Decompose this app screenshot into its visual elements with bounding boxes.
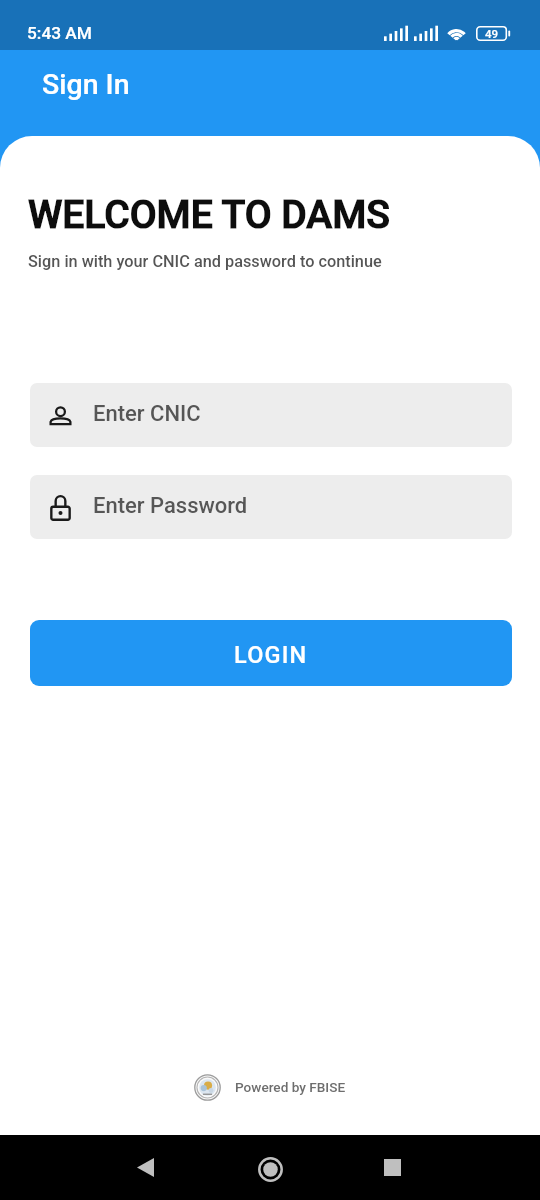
staticText: Enter Password — [93, 493, 248, 519]
button[interactable]: Enter CNIC — [30, 383, 512, 447]
button[interactable]: Home — [243, 1142, 298, 1197]
button[interactable]: Recent apps — [365, 1140, 420, 1195]
staticText: 5:43 AM — [27, 23, 92, 43]
button[interactable]: LOGIN — [30, 620, 512, 686]
staticText: Powered by FBISE — [235, 1079, 346, 1095]
staticText: LOGIN — [234, 641, 308, 669]
staticText: 49 — [485, 27, 499, 40]
button[interactable]: Enter Password — [30, 475, 512, 539]
staticText: WELCOME TO DAMS — [28, 192, 390, 238]
button[interactable]: Back — [118, 1140, 173, 1195]
staticText: Sign In — [42, 68, 130, 101]
staticText: Sign in with your CNIC and password to c… — [28, 252, 382, 271]
staticText: Enter CNIC — [93, 401, 201, 427]
